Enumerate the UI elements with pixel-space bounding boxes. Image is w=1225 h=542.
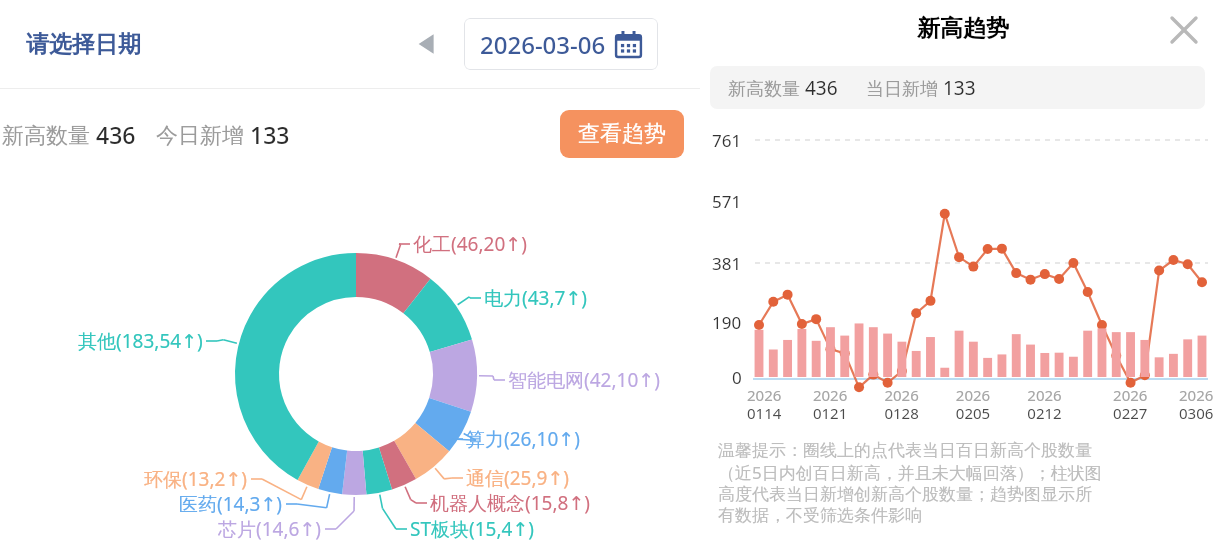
button[interactable]: Previous day (410, 27, 444, 61)
staticText: 新高数量 (728, 76, 805, 101)
staticText: 请选择日期 (26, 30, 141, 59)
staticText: （近5日内创百日新高，并且未大幅回落）；柱状图 (718, 461, 1102, 484)
button[interactable]: Close (1162, 8, 1206, 52)
button[interactable]: 查看趋势 (560, 110, 684, 158)
staticText: 新高数量 (2, 119, 96, 149)
staticText: 436 (96, 119, 136, 150)
staticText: 436 (805, 75, 838, 101)
staticText: 今日新增 (156, 119, 250, 149)
staticText: 2026-03-06 (480, 28, 606, 61)
staticText: 温馨提示：圈线上的点代表当日百日新高个股数量 (718, 440, 1092, 461)
staticText: 当日新增 (866, 76, 943, 101)
staticText: 高度代表当日新增创新高个股数量；趋势图显示所 (718, 484, 1092, 505)
staticText: 133 (250, 119, 290, 150)
button[interactable]: 2026-03-06 (464, 18, 658, 70)
staticText: 新高趋势 (917, 14, 1009, 43)
staticText: 查看趋势 (578, 120, 666, 148)
staticText: 有数据，不受筛选条件影响 (718, 505, 922, 526)
staticText: 133 (943, 75, 976, 101)
